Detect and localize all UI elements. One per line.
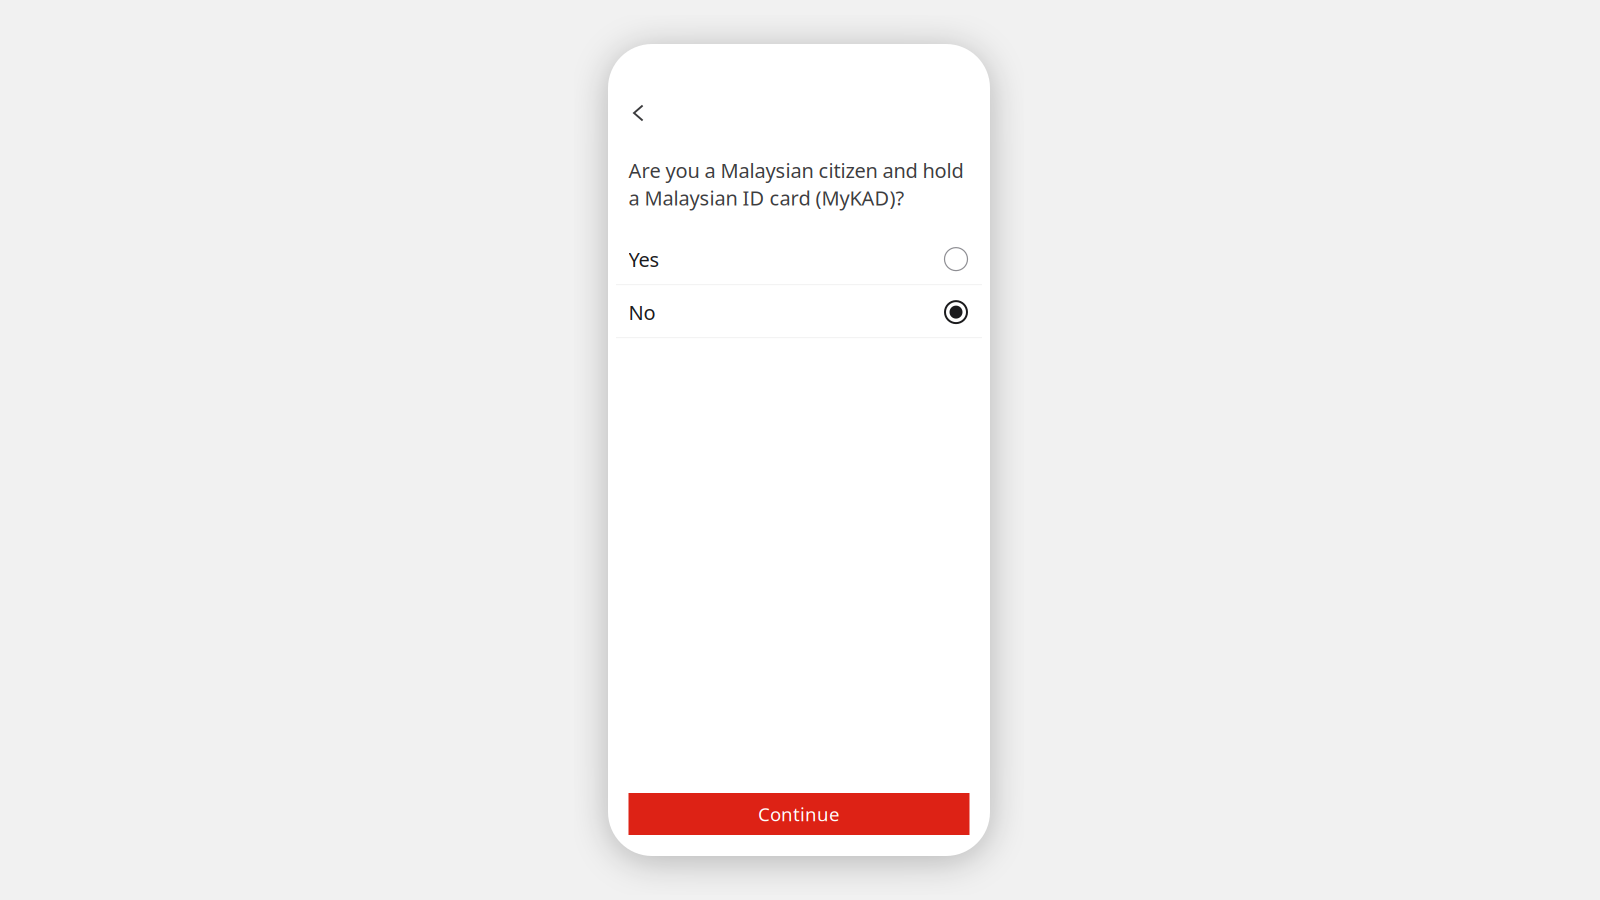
staticText: No [628, 299, 655, 325]
button[interactable]: Yes [608, 232, 990, 285]
button[interactable]: Back [608, 91, 657, 135]
staticText: Are you a Malaysian citizen and hold a M… [628, 157, 963, 211]
button[interactable]: Continue [628, 793, 969, 835]
staticText: Yes [628, 246, 659, 272]
staticText: Continue [758, 802, 840, 826]
button[interactable]: No [608, 285, 990, 338]
